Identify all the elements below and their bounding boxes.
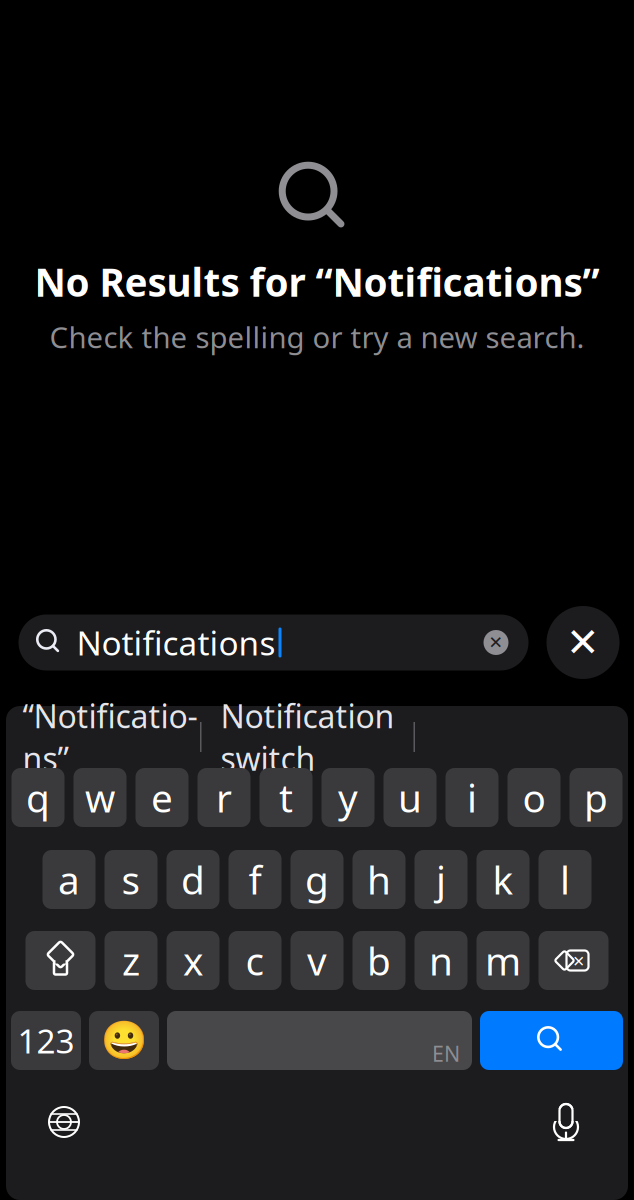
staticText: i bbox=[467, 772, 477, 823]
button[interactable]: w bbox=[73, 768, 126, 827]
button[interactable]: j bbox=[414, 850, 467, 909]
staticText: y bbox=[338, 772, 358, 823]
staticText: v bbox=[307, 935, 327, 986]
button[interactable]: i bbox=[445, 768, 498, 827]
button[interactable]: z bbox=[104, 931, 157, 990]
staticText: r bbox=[216, 772, 232, 823]
staticText: u bbox=[398, 772, 422, 823]
button[interactable]: k bbox=[476, 850, 529, 909]
button[interactable]: Space bbox=[167, 1011, 472, 1070]
staticText: n bbox=[429, 935, 453, 986]
button[interactable]: Emoji bbox=[89, 1011, 159, 1070]
staticText: c bbox=[245, 935, 264, 986]
button[interactable]: d bbox=[166, 850, 219, 909]
button[interactable]: 123 bbox=[11, 1011, 81, 1070]
button[interactable]: e bbox=[135, 768, 188, 827]
button[interactable]: l bbox=[538, 850, 591, 909]
button[interactable]: c bbox=[228, 931, 281, 990]
button[interactable]: Search bbox=[480, 1011, 623, 1070]
staticText: 123 bbox=[17, 1018, 74, 1063]
button[interactable]: Delete bbox=[538, 931, 608, 990]
button[interactable]: n bbox=[414, 931, 467, 990]
staticText: ✕ bbox=[488, 633, 503, 652]
button[interactable]: “Notifications” bbox=[20, 713, 200, 761]
button[interactable]: b bbox=[352, 931, 405, 990]
staticText: p bbox=[584, 772, 608, 823]
button[interactable]: r bbox=[197, 768, 250, 827]
button[interactable]: v bbox=[290, 931, 343, 990]
button[interactable]: Close search bbox=[546, 606, 619, 679]
staticText: x bbox=[183, 935, 203, 986]
staticText: b bbox=[367, 935, 391, 986]
staticText: j bbox=[436, 854, 446, 905]
staticText: × bbox=[573, 947, 584, 974]
staticText: d bbox=[181, 854, 205, 905]
staticText: w bbox=[85, 772, 115, 823]
button[interactable]: t bbox=[259, 768, 312, 827]
staticText: m bbox=[485, 935, 521, 986]
staticText: h bbox=[367, 854, 391, 905]
staticText: No Results for “Notifications” bbox=[34, 256, 599, 307]
staticText: 😀 bbox=[101, 1019, 147, 1062]
staticText: ✕ bbox=[566, 620, 600, 665]
staticText: Notification switch bbox=[220, 694, 394, 779]
button[interactable]: p bbox=[569, 768, 622, 827]
button[interactable]: f bbox=[228, 850, 281, 909]
staticText: t bbox=[279, 772, 293, 823]
staticText: EN bbox=[432, 1039, 460, 1068]
button[interactable]: Notifications bbox=[18, 614, 528, 670]
staticText: o bbox=[522, 772, 545, 823]
staticText: s bbox=[121, 854, 140, 905]
button[interactable]: o bbox=[507, 768, 560, 827]
button[interactable]: x bbox=[166, 931, 219, 990]
button[interactable]: h bbox=[352, 850, 405, 909]
button[interactable]: g bbox=[290, 850, 343, 909]
staticText: z bbox=[122, 935, 140, 986]
button[interactable]: m bbox=[476, 931, 529, 990]
staticText: Notifications bbox=[76, 620, 275, 665]
button[interactable]: y bbox=[321, 768, 374, 827]
staticText: e bbox=[151, 772, 173, 823]
staticText: f bbox=[248, 854, 261, 905]
button[interactable]: q bbox=[11, 768, 64, 827]
staticText: Check the spelling or try a new search. bbox=[49, 317, 584, 356]
button[interactable]: Notification switch bbox=[201, 713, 413, 761]
button[interactable]: Shift bbox=[25, 931, 95, 990]
button[interactable]: Next keyboard bbox=[36, 1097, 92, 1147]
staticText: g bbox=[305, 854, 329, 905]
button[interactable]: u bbox=[383, 768, 436, 827]
staticText: a bbox=[58, 854, 80, 905]
button[interactable]: s bbox=[104, 850, 157, 909]
staticText: “Notifications” bbox=[22, 694, 197, 779]
staticText: q bbox=[26, 772, 50, 823]
staticText: l bbox=[560, 854, 570, 905]
button[interactable]: Dictate bbox=[538, 1097, 594, 1147]
staticText: k bbox=[492, 854, 513, 905]
button[interactable]: a bbox=[42, 850, 95, 909]
